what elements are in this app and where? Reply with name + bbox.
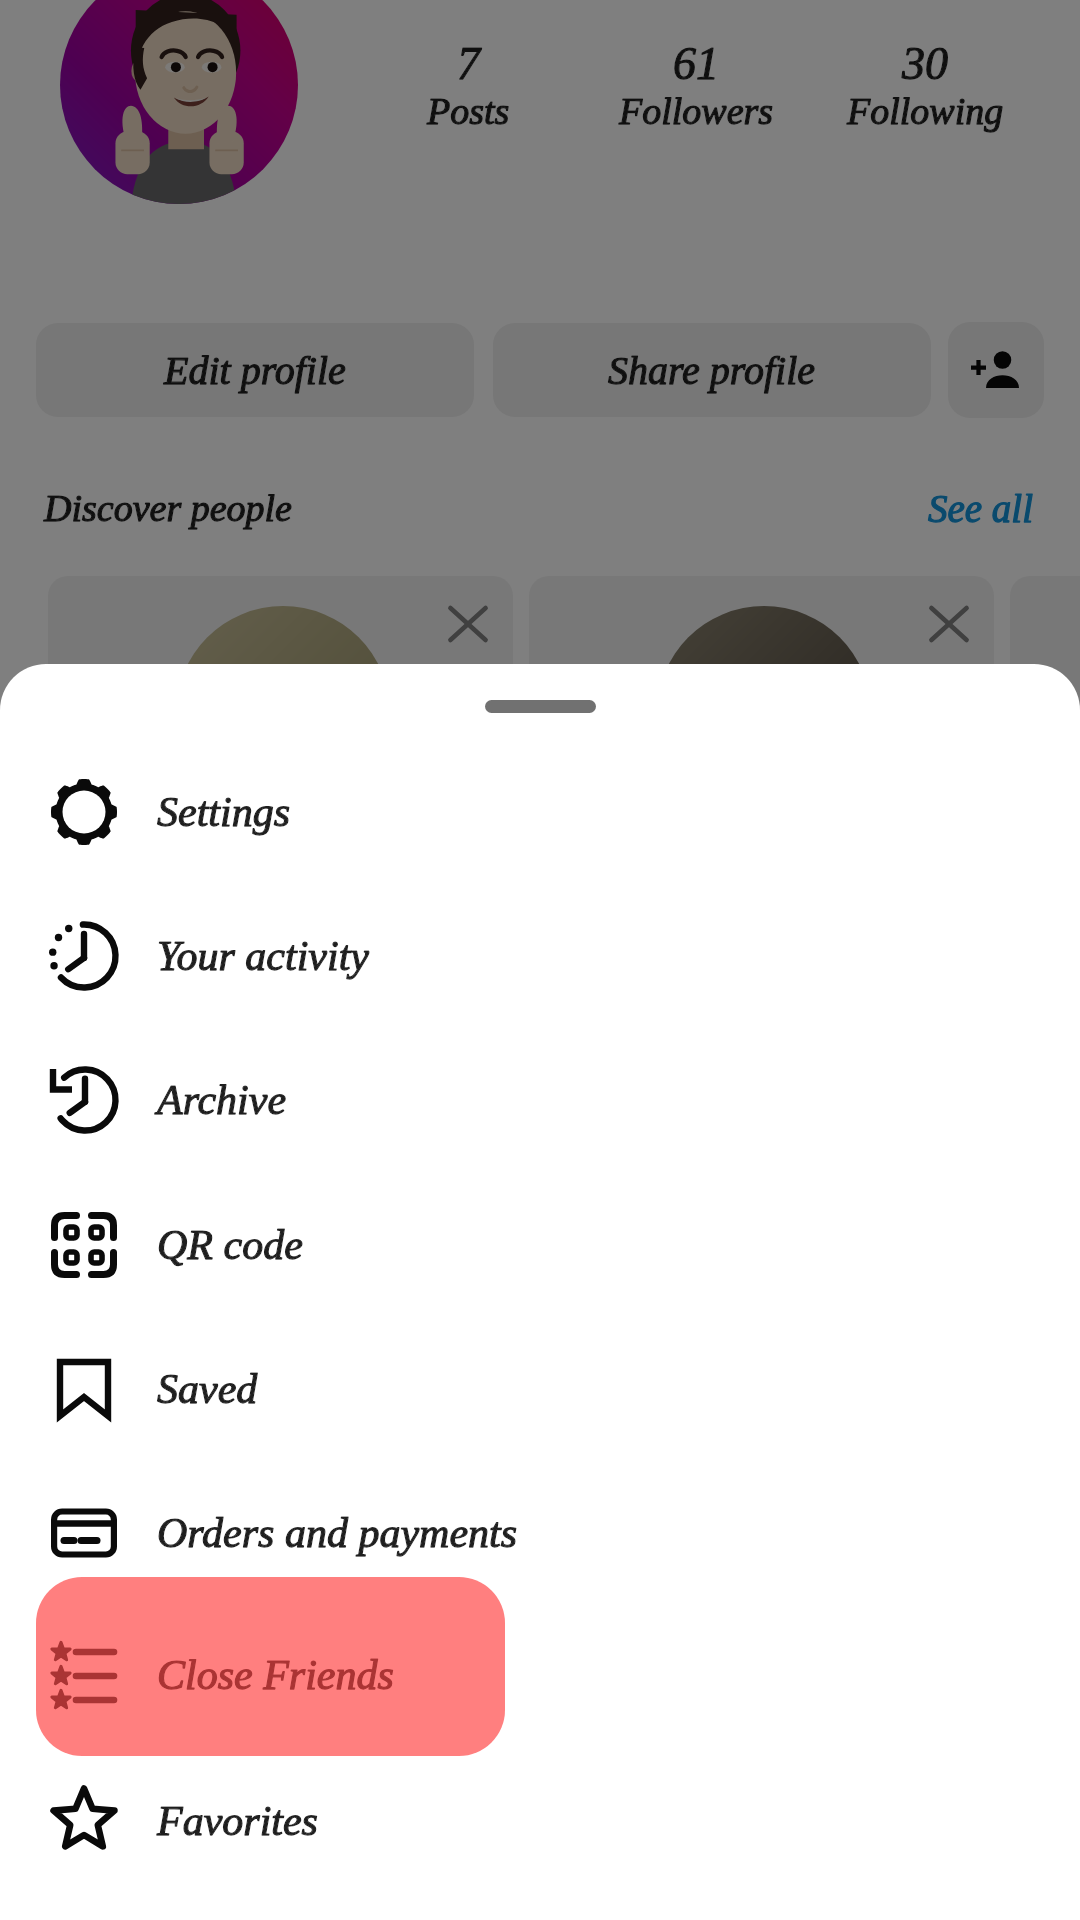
button[interactable]: Favorites xyxy=(0,1749,1080,1893)
button[interactable]: Settings xyxy=(0,740,1080,884)
staticText: 61 xyxy=(673,38,719,89)
staticText: Settings xyxy=(157,789,290,836)
button[interactable]: Discover people xyxy=(44,487,292,529)
staticText: 61 xyxy=(673,38,719,89)
button[interactable]: Dismiss suggestion xyxy=(929,604,969,644)
staticText: QR code xyxy=(157,1222,303,1269)
staticText: Followers xyxy=(619,90,774,132)
button[interactable]: Dismiss suggestion xyxy=(48,576,513,906)
staticText: Your activity xyxy=(157,933,369,980)
button[interactable]: Dismiss suggestion xyxy=(1010,576,1080,906)
staticText: 30 xyxy=(902,38,948,89)
staticText: 7 xyxy=(457,38,480,89)
button[interactable]: 7 xyxy=(358,38,578,132)
button[interactable]: Profile photo xyxy=(60,0,298,204)
staticText: Orders and payments xyxy=(157,1510,518,1557)
button[interactable]: 61 xyxy=(586,38,806,132)
staticText: Share profile xyxy=(608,348,816,392)
button[interactable]: Share profile xyxy=(493,323,931,417)
staticText: Posts xyxy=(427,90,510,132)
staticText: 30 xyxy=(902,38,948,89)
staticText: Saved xyxy=(157,1366,258,1413)
staticText: Posts xyxy=(427,90,510,132)
staticText: Settings xyxy=(157,789,290,836)
staticText: Share profile xyxy=(608,348,816,392)
button[interactable]: QR code xyxy=(0,1173,1080,1317)
staticText: Orders and payments xyxy=(157,1510,518,1557)
button[interactable]: Discover people xyxy=(948,322,1044,418)
staticText: Followers xyxy=(619,90,774,132)
button[interactable]: Saved xyxy=(0,1317,1080,1461)
staticText: 7 xyxy=(457,38,480,89)
staticText: Close Friends xyxy=(157,1652,394,1699)
button[interactable]: 30 xyxy=(815,38,1035,132)
staticText: Following xyxy=(847,90,1004,132)
staticText: Discover people xyxy=(44,487,292,529)
staticText: Discover people xyxy=(44,487,292,529)
staticText: Edit profile xyxy=(164,348,346,392)
staticText: See all xyxy=(928,487,1034,530)
staticText: Archive xyxy=(157,1077,287,1124)
button[interactable]: Edit profile xyxy=(36,323,474,417)
staticText: Close Friends xyxy=(157,1652,394,1699)
staticText: Edit profile xyxy=(164,348,346,392)
button[interactable]: Close Friends xyxy=(36,1577,505,1756)
button[interactable]: Orders and payments xyxy=(0,1461,1080,1605)
staticText: Saved xyxy=(157,1366,258,1413)
staticText: QR code xyxy=(157,1222,303,1269)
button[interactable]: Your activity xyxy=(0,884,1080,1028)
button[interactable]: Dismiss suggestion xyxy=(448,604,488,644)
staticText: See all xyxy=(928,487,1034,530)
button[interactable]: Dismiss suggestion xyxy=(529,576,994,906)
staticText: Following xyxy=(847,90,1004,132)
button[interactable]: Archive xyxy=(0,1028,1080,1172)
staticText: Your activity xyxy=(157,933,369,980)
button[interactable]: See all xyxy=(928,487,1034,530)
staticText: Favorites xyxy=(157,1798,318,1845)
staticText: Favorites xyxy=(157,1798,318,1845)
staticText: Archive xyxy=(157,1077,287,1124)
